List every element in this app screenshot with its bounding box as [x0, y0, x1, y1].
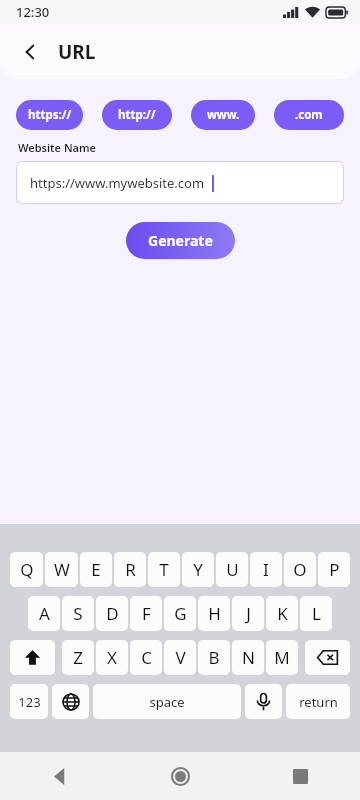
button[interactable]: U [216, 552, 248, 587]
button[interactable]: O [284, 552, 316, 587]
button[interactable]: https://www.mywebsite.com [16, 161, 344, 204]
staticText: G [174, 602, 187, 625]
staticText: X [107, 646, 117, 669]
staticText: S [73, 602, 83, 625]
staticText: URL [58, 39, 96, 65]
button[interactable]: L [300, 596, 332, 631]
staticText: A [39, 602, 50, 625]
staticText: Q [20, 558, 34, 581]
button[interactable]: Voice input [245, 684, 282, 719]
staticText: L [312, 602, 321, 625]
staticText: P [329, 558, 340, 581]
button[interactable]: K [266, 596, 298, 631]
staticText: R [125, 558, 136, 581]
staticText: 123 [18, 693, 41, 711]
button[interactable]: I [250, 552, 282, 587]
staticText: V [175, 646, 186, 669]
button[interactable]: return [286, 684, 350, 719]
button[interactable]: Back [0, 752, 120, 800]
button[interactable]: Recents [240, 752, 360, 800]
staticText: U [226, 558, 239, 581]
button[interactable]: B [198, 640, 230, 675]
button[interactable]: Back [10, 32, 50, 72]
staticText: 12:30 [16, 3, 50, 21]
staticText: T [159, 558, 169, 581]
staticText: N [242, 646, 255, 669]
button[interactable]: N [232, 640, 264, 675]
button[interactable]: Generate [126, 222, 235, 259]
button[interactable]: H [198, 596, 230, 631]
staticText: www. [207, 107, 240, 123]
staticText: J [246, 602, 251, 625]
staticText: https://www.mywebsite.com [30, 174, 205, 192]
staticText: B [208, 646, 220, 669]
staticText: https:// [28, 107, 72, 123]
staticText: Z [73, 646, 83, 669]
staticText: Y [193, 558, 203, 581]
button[interactable]: M [266, 640, 298, 675]
staticText: O [293, 558, 307, 581]
staticText: E [91, 558, 101, 581]
staticText: return [299, 693, 338, 711]
staticText: F [142, 602, 151, 625]
button[interactable]: Home [120, 752, 240, 800]
staticText: W [54, 558, 70, 581]
button[interactable]: space [93, 684, 241, 719]
staticText: I [263, 558, 269, 581]
button[interactable]: P [318, 552, 350, 587]
button[interactable]: Backspace [305, 640, 350, 675]
button[interactable]: E [80, 552, 112, 587]
button[interactable]: J [232, 596, 264, 631]
button[interactable]: X [96, 640, 128, 675]
button[interactable]: F [130, 596, 162, 631]
button[interactable]: G [164, 596, 196, 631]
button[interactable]: D [96, 596, 128, 631]
staticText: M [274, 646, 290, 669]
staticText: space [149, 693, 185, 711]
button[interactable]: Z [62, 640, 94, 675]
staticText: D [106, 602, 119, 625]
button[interactable]: R [114, 552, 146, 587]
staticText: K [277, 602, 288, 625]
button[interactable]: .com [274, 100, 344, 130]
button[interactable]: W [45, 552, 78, 587]
button[interactable]: Change language [52, 684, 89, 719]
button[interactable]: Q [10, 552, 43, 587]
button[interactable]: https:// [16, 100, 83, 130]
staticText: C [141, 646, 152, 669]
button[interactable]: C [130, 640, 162, 675]
button[interactable]: S [62, 596, 94, 631]
staticText: Generate [148, 231, 213, 250]
staticText: http:// [118, 107, 156, 123]
button[interactable]: 123 [10, 684, 48, 719]
button[interactable]: A [28, 596, 60, 631]
button[interactable]: T [148, 552, 180, 587]
staticText: H [208, 602, 221, 625]
button[interactable]: Y [182, 552, 214, 587]
button[interactable]: www. [191, 100, 255, 130]
button[interactable]: V [164, 640, 196, 675]
button[interactable]: Shift [10, 640, 55, 675]
staticText: Website Name [18, 140, 97, 155]
button[interactable]: http:// [102, 100, 172, 130]
staticText: .com [295, 107, 323, 123]
